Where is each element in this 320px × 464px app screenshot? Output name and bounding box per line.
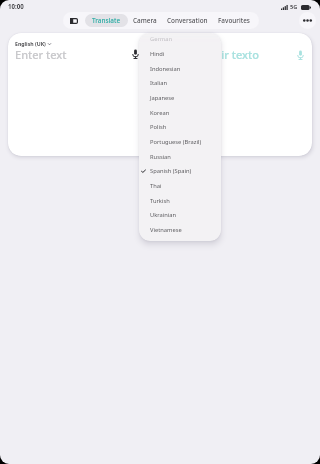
- staticText: Conversation: [167, 16, 208, 25]
- button[interactable]: Voice input source language: [129, 47, 142, 60]
- staticText: Polish: [150, 123, 167, 131]
- button[interactable]: Indonesian: [139, 62, 221, 76]
- button[interactable]: Russian: [139, 150, 221, 164]
- staticText: Italian: [150, 79, 167, 87]
- staticText: Ukrainian: [150, 211, 177, 219]
- button[interactable]: German: [139, 33, 221, 46]
- staticText: 10:00: [8, 2, 24, 10]
- button[interactable]: Vietnamese: [139, 223, 221, 237]
- button[interactable]: Favourites: [213, 14, 255, 27]
- staticText: English (UK): [15, 40, 46, 47]
- staticText: Translate: [92, 16, 121, 25]
- staticText: Thai: [150, 182, 162, 190]
- staticText: Japanese: [150, 94, 175, 102]
- staticText: Camera: [133, 16, 157, 25]
- staticText: Enter text: [15, 47, 67, 62]
- button[interactable]: Portuguese (Brazil): [139, 135, 221, 149]
- staticText: Portuguese (Brazil): [150, 138, 202, 146]
- button[interactable]: Side panel: [70, 17, 78, 25]
- staticText: Escribir texto: [190, 47, 260, 62]
- button[interactable]: Turkish: [139, 194, 221, 208]
- button[interactable]: Spanish (Spain): [139, 164, 221, 178]
- staticText: Korean: [150, 109, 170, 117]
- button[interactable]: English (UK): [15, 40, 51, 47]
- button[interactable]: Camera: [128, 14, 162, 27]
- button[interactable]: Korean: [139, 106, 221, 120]
- button[interactable]: More options: [299, 12, 316, 29]
- staticText: Vietnamese: [150, 226, 182, 234]
- staticText: 5G: [290, 3, 298, 11]
- button[interactable]: Polish: [139, 120, 221, 134]
- button[interactable]: Japanese: [139, 91, 221, 105]
- staticText: German: [150, 35, 172, 43]
- button[interactable]: Voice input target language: [294, 48, 307, 61]
- staticText: Hindi: [150, 50, 165, 58]
- button[interactable]: Ukrainian: [139, 208, 221, 222]
- staticText: Russian: [150, 153, 171, 161]
- staticText: Indonesian: [150, 65, 181, 73]
- button[interactable]: Translate: [85, 14, 128, 27]
- staticText: Spanish (Spain): [150, 167, 192, 175]
- button[interactable]: Hindi: [139, 47, 221, 61]
- staticText: Turkish: [150, 197, 170, 205]
- button[interactable]: Thai: [139, 179, 221, 193]
- button[interactable]: Conversation: [162, 14, 213, 27]
- button[interactable]: Italian: [139, 76, 221, 90]
- staticText: Favourites: [218, 16, 250, 25]
